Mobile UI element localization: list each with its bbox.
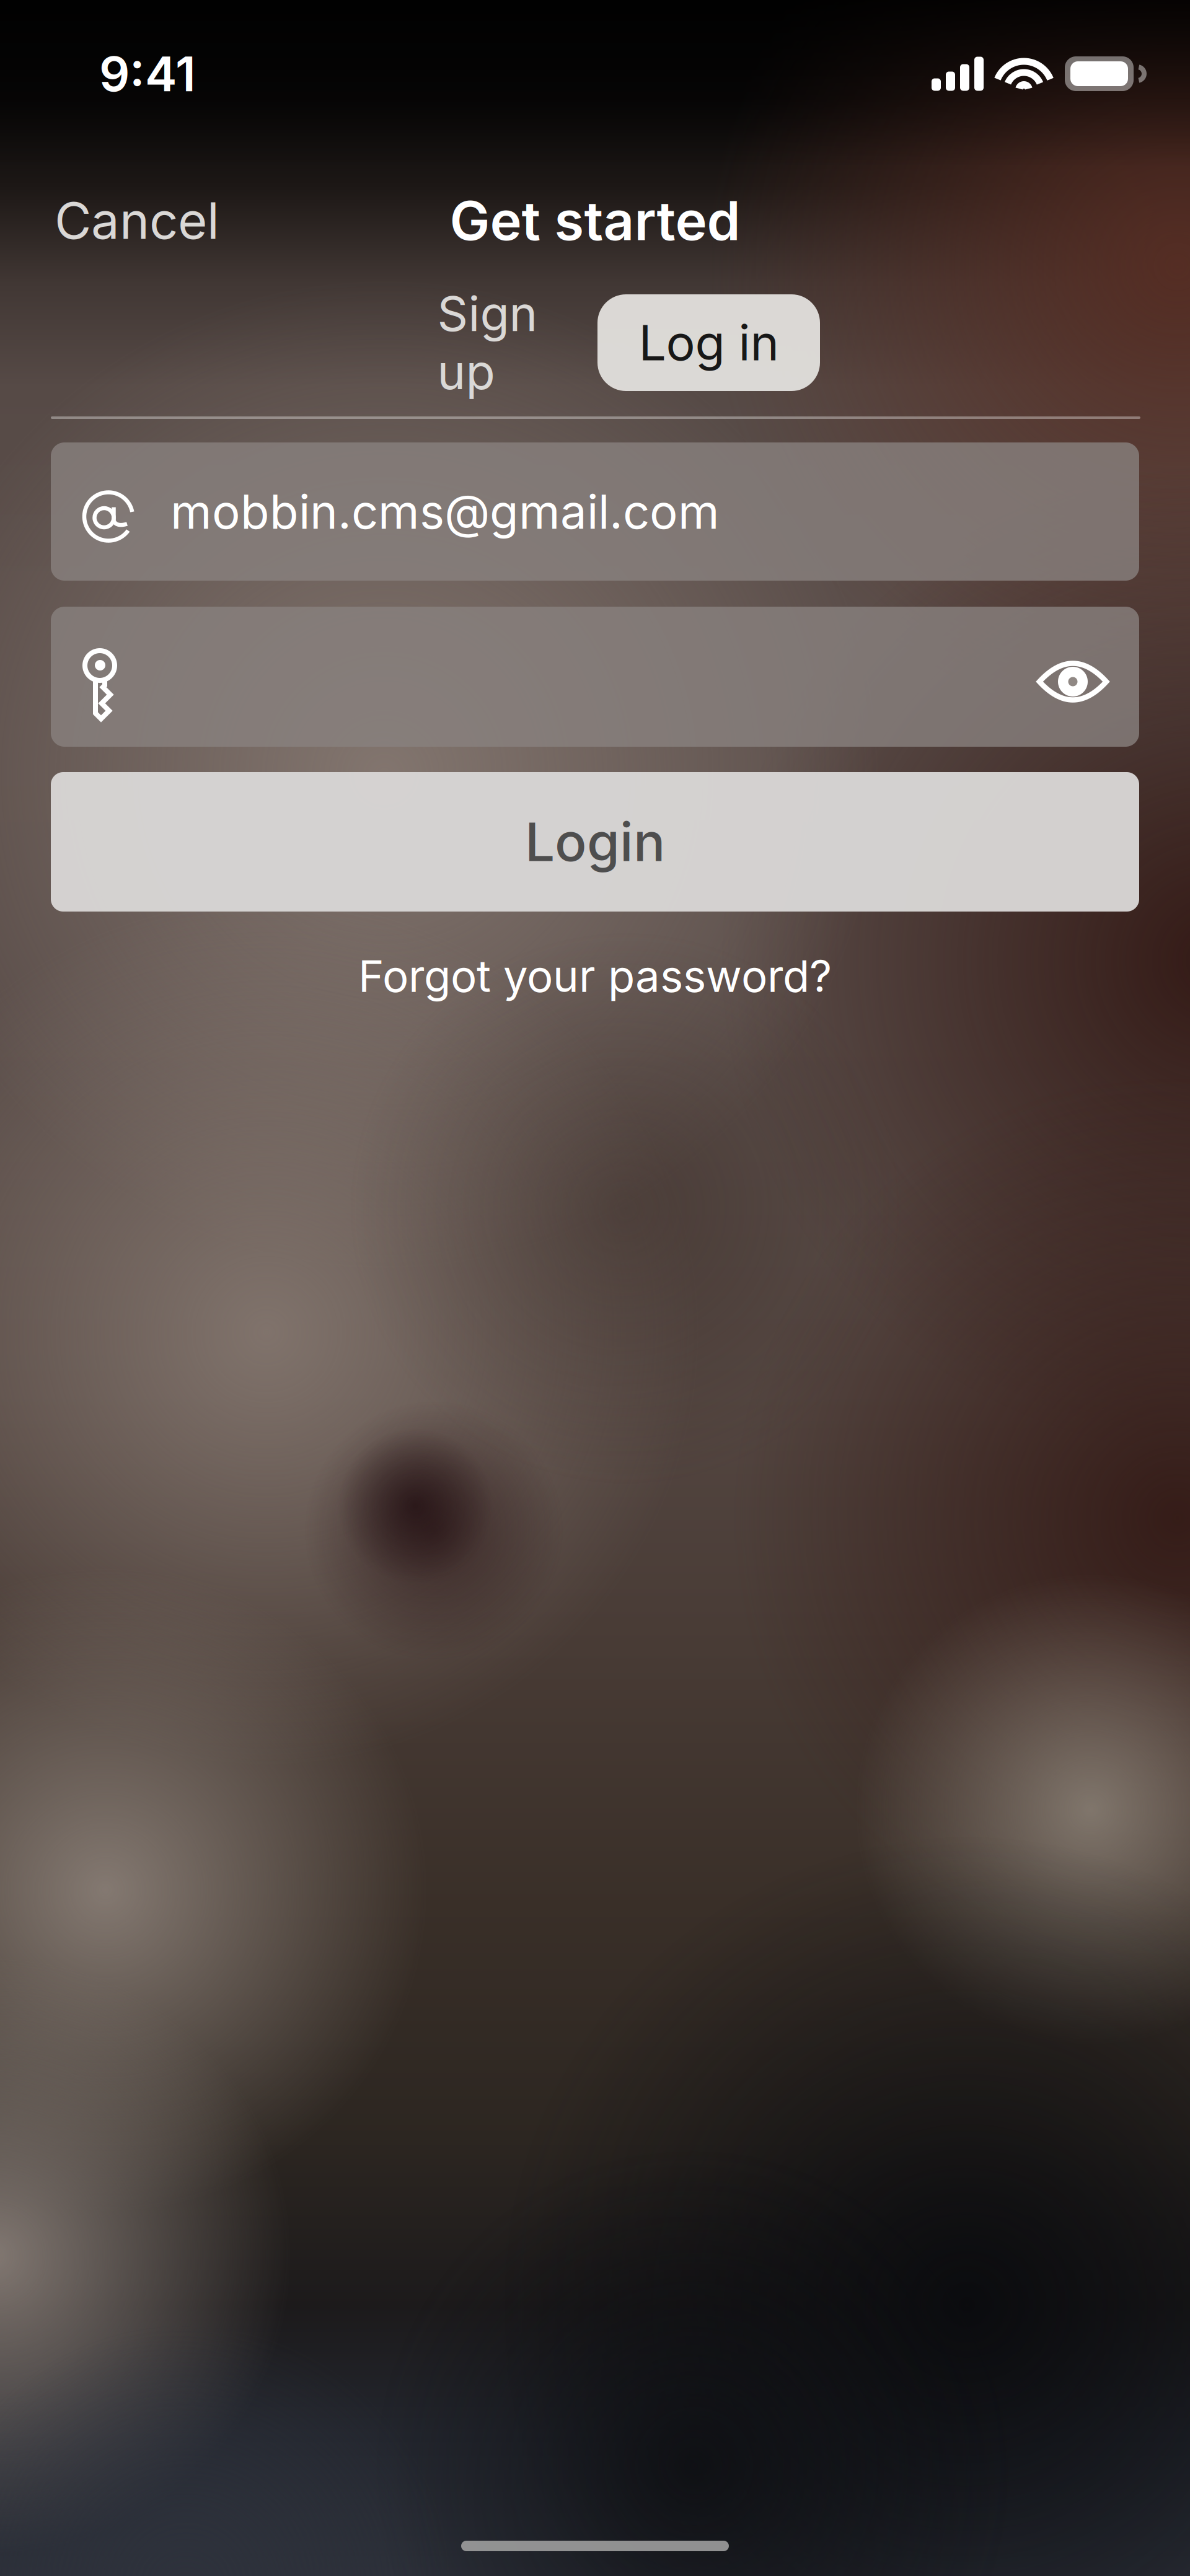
button[interactable]: Sign up bbox=[405, 294, 570, 391]
staticText: Sign up bbox=[437, 285, 538, 401]
staticText: Forgot your password? bbox=[358, 949, 832, 1002]
button[interactable]: Log in bbox=[597, 294, 820, 391]
button[interactable]: Show password bbox=[1036, 653, 1139, 700]
button[interactable]: Forgot your password? bbox=[0, 941, 1190, 1011]
button[interactable]: Login bbox=[51, 772, 1139, 912]
staticText: Get started bbox=[450, 188, 740, 253]
staticText: mobbin.cms@gmail.com bbox=[170, 483, 720, 540]
staticText: Login bbox=[525, 810, 665, 874]
staticText: 9:41 bbox=[99, 45, 196, 103]
staticText: Cancel bbox=[55, 190, 219, 251]
staticText: Log in bbox=[639, 313, 779, 372]
button[interactable]: Cancel bbox=[0, 182, 315, 259]
